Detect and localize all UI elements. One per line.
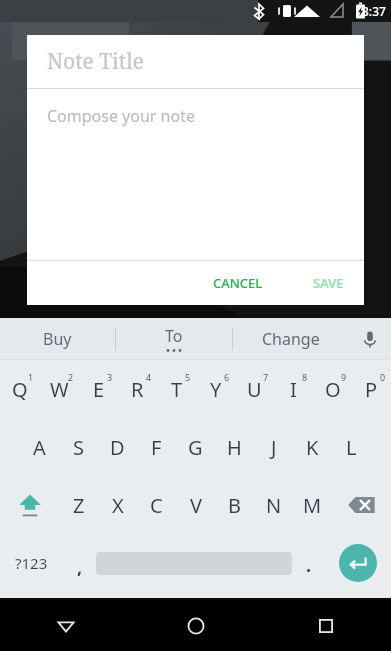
staticText: B: [228, 492, 241, 519]
staticText: V: [190, 492, 202, 519]
button[interactable]: 7: [235, 360, 274, 418]
staticText: Y: [210, 376, 222, 403]
staticText: M: [303, 492, 322, 519]
button[interactable]: N: [254, 476, 293, 534]
staticText: F: [151, 434, 162, 461]
staticText: 5: [185, 371, 191, 383]
staticText: Change: [262, 328, 320, 350]
button[interactable]: ,: [63, 534, 96, 592]
button[interactable]: C: [137, 476, 176, 534]
staticText: P: [365, 376, 378, 403]
staticText: K: [306, 434, 319, 461]
staticText: CANCEL: [213, 274, 263, 292]
staticText: G: [188, 434, 203, 461]
button[interactable]: J: [254, 418, 293, 476]
staticText: 3: [107, 371, 113, 383]
button[interactable]: H: [215, 418, 254, 476]
staticText: E: [93, 376, 105, 403]
staticText: .: [306, 553, 312, 578]
staticText: N: [266, 492, 282, 519]
staticText: Buy: [43, 328, 72, 350]
button[interactable]: Enter: [325, 534, 391, 592]
button[interactable]: K: [293, 418, 332, 476]
staticText: Z: [73, 492, 85, 519]
staticText: L: [346, 434, 357, 461]
staticText: 9: [341, 371, 347, 383]
button[interactable]: G: [176, 418, 215, 476]
button[interactable]: ?123: [0, 534, 63, 592]
staticText: 2: [68, 371, 74, 383]
button[interactable]: V: [176, 476, 215, 534]
staticText: H: [227, 434, 242, 461]
button[interactable]: 6: [196, 360, 235, 418]
button[interactable]: SAVE: [301, 265, 356, 301]
button[interactable]: [96, 534, 292, 592]
button[interactable]: CANCEL: [201, 265, 275, 301]
button[interactable]: Backspace: [332, 476, 391, 534]
button[interactable]: 3: [79, 360, 118, 418]
staticText: Q: [12, 376, 28, 403]
staticText: 0: [380, 371, 386, 383]
staticText: C: [150, 492, 163, 519]
button[interactable]: L: [332, 418, 371, 476]
button[interactable]: M: [293, 476, 332, 534]
button[interactable]: B: [215, 476, 254, 534]
staticText: O: [325, 376, 341, 403]
button[interactable]: Back: [0, 600, 131, 651]
button[interactable]: 1: [0, 360, 40, 418]
button[interactable]: .: [292, 534, 325, 592]
staticText: R: [131, 376, 144, 403]
staticText: 4: [146, 371, 152, 383]
staticText: J: [271, 434, 277, 461]
staticText: I: [290, 376, 297, 403]
button[interactable]: D: [98, 418, 137, 476]
staticText: 6: [224, 371, 230, 383]
staticText: D: [110, 434, 125, 461]
button[interactable]: 5: [157, 360, 196, 418]
staticText: W: [50, 376, 69, 403]
button[interactable]: 4: [118, 360, 157, 418]
staticText: 7: [263, 371, 269, 383]
staticText: ,: [77, 555, 83, 580]
button[interactable]: 9: [313, 360, 352, 418]
staticText: Note Title: [47, 47, 144, 76]
button[interactable]: Change: [233, 318, 349, 359]
button[interactable]: Voice input: [349, 318, 391, 359]
button[interactable]: A: [20, 418, 59, 476]
staticText: Compose your note: [47, 105, 195, 127]
button[interactable]: Compose your note: [27, 89, 364, 260]
staticText: S: [73, 434, 84, 461]
button[interactable]: X: [98, 476, 137, 534]
staticText: ?123: [15, 553, 48, 573]
button[interactable]: To: [116, 318, 232, 359]
staticText: 3:37: [362, 3, 386, 19]
button[interactable]: Recents: [261, 600, 391, 651]
staticText: To: [165, 325, 183, 347]
button[interactable]: Shift: [0, 476, 59, 534]
button[interactable]: 0: [352, 360, 391, 418]
staticText: 8: [302, 371, 308, 383]
staticText: SAVE: [313, 274, 344, 292]
button[interactable]: Z: [59, 476, 98, 534]
button[interactable]: F: [137, 418, 176, 476]
staticText: 1: [28, 371, 34, 383]
button[interactable]: Note Title: [27, 35, 364, 88]
button[interactable]: Home: [131, 600, 261, 651]
button[interactable]: 2: [40, 360, 79, 418]
button[interactable]: S: [59, 418, 98, 476]
staticText: T: [171, 376, 183, 403]
button[interactable]: Buy: [0, 318, 115, 359]
staticText: A: [33, 434, 46, 461]
button[interactable]: 8: [274, 360, 313, 418]
staticText: U: [247, 376, 262, 403]
staticText: X: [112, 492, 124, 519]
